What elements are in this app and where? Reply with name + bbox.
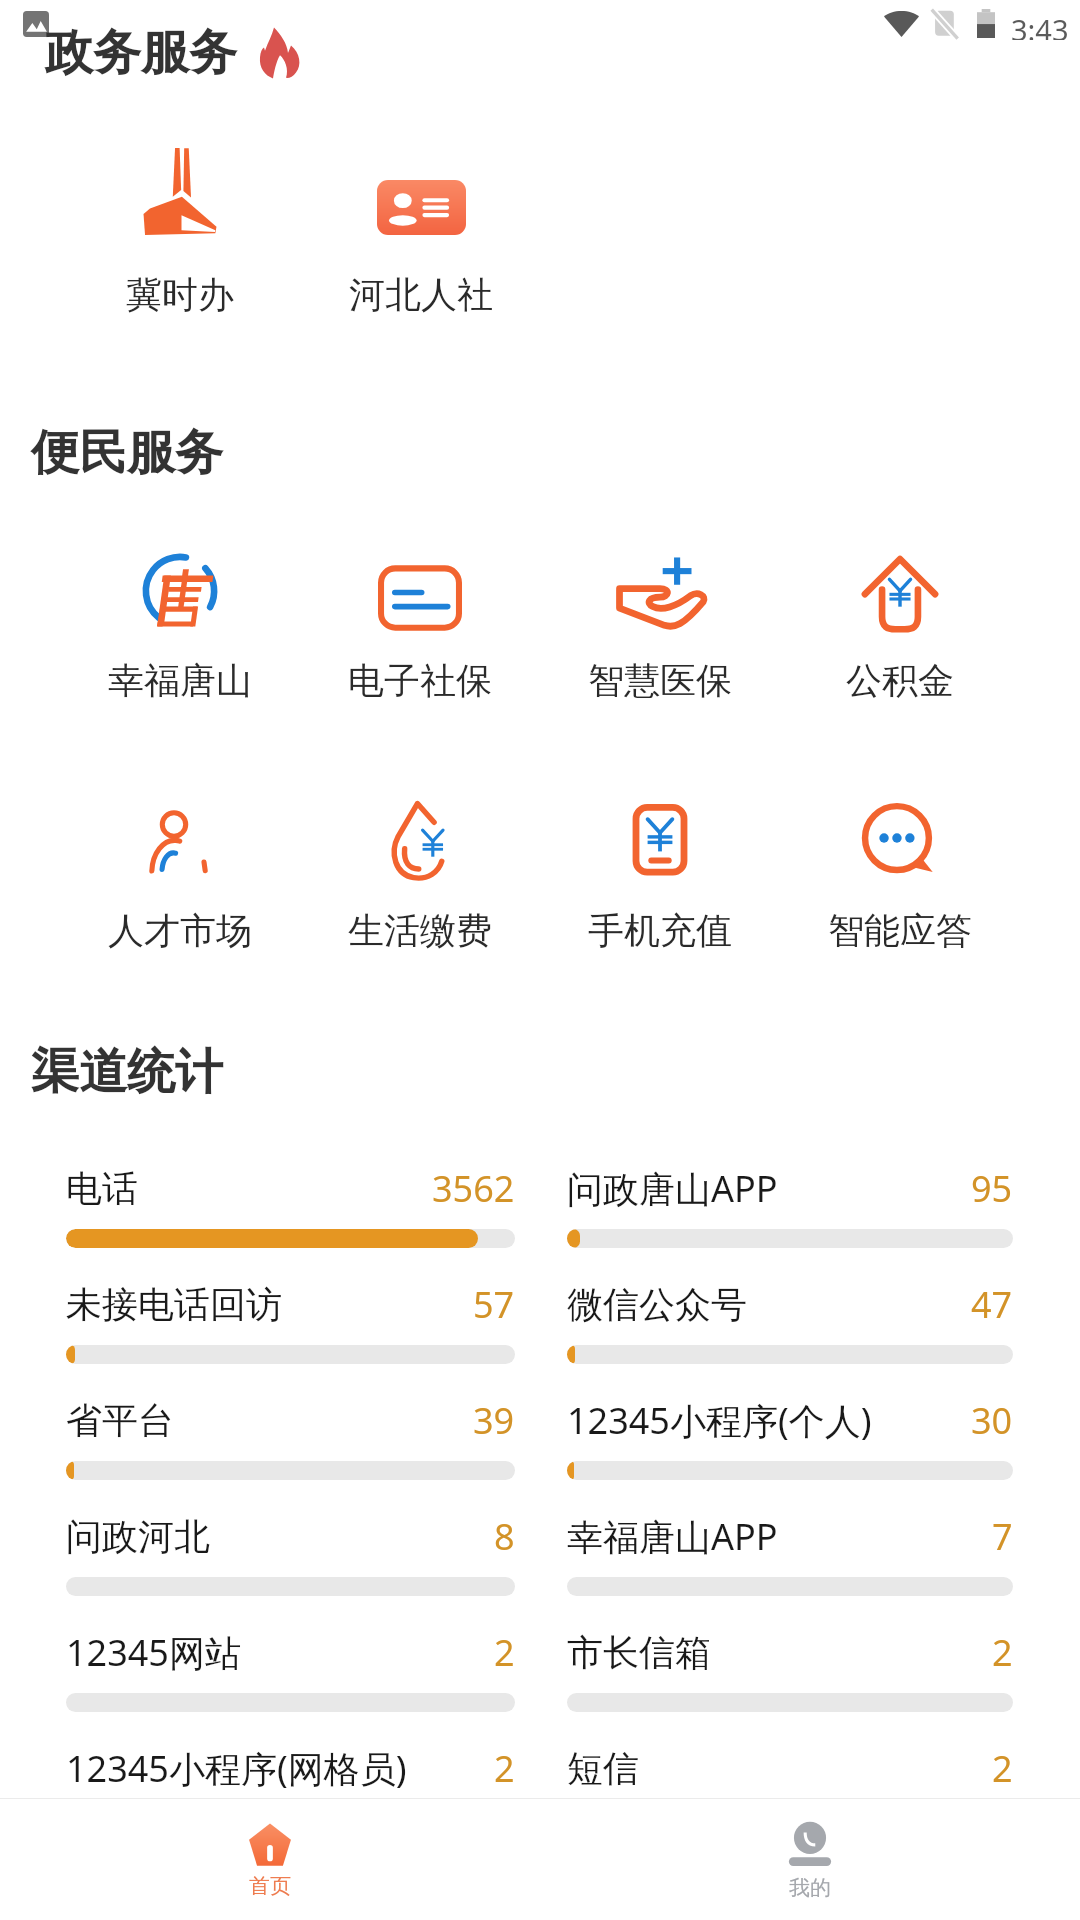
staticText: 幸福唐山APP	[567, 1512, 778, 1561]
staticText: 微信公众号	[567, 1282, 747, 1327]
staticText: 3:43	[1011, 10, 1069, 40]
button[interactable]: 12345网站	[66, 1628, 515, 1712]
button[interactable]: 生活缴费	[310, 802, 530, 953]
staticText: 渠道统计	[31, 1042, 223, 1102]
staticText: 问政河北	[66, 1514, 210, 1559]
staticText: 短信	[567, 1746, 639, 1791]
button[interactable]: 幸福唐山APP	[567, 1512, 1013, 1596]
other: App logo	[23, 11, 49, 37]
button[interactable]: 手机充值	[550, 802, 770, 953]
staticText: 3562	[432, 1164, 515, 1213]
button[interactable]: 问政唐山APP	[567, 1164, 1013, 1248]
staticText: 12345小程序(个人)	[567, 1396, 872, 1445]
button[interactable]: 我的	[742, 1799, 878, 1901]
staticText: 政务服务	[45, 23, 237, 83]
staticText: 7	[992, 1512, 1013, 1561]
staticText: 39	[473, 1396, 515, 1445]
staticText: 30	[971, 1396, 1013, 1445]
staticText: 2	[992, 1628, 1013, 1677]
button[interactable]: 微信公众号	[567, 1280, 1013, 1364]
staticText: 人才市场	[108, 908, 252, 953]
staticText: 2	[494, 1628, 515, 1677]
button[interactable]: 智能应答	[790, 802, 1010, 953]
button[interactable]: 电子社保	[310, 552, 530, 703]
staticText: 智慧医保	[588, 658, 732, 703]
staticText: 智能应答	[828, 908, 972, 953]
staticText: 生活缴费	[348, 908, 492, 953]
staticText: 幸福唐山	[108, 658, 252, 703]
button[interactable]: 首页	[202, 1799, 338, 1899]
button[interactable]: 智慧医保	[550, 552, 770, 703]
staticText: 12345网站	[66, 1628, 241, 1677]
button[interactable]: 河北人社	[311, 141, 531, 317]
staticText: 未接电话回访	[66, 1282, 282, 1327]
button[interactable]: 短信	[567, 1744, 1013, 1828]
button[interactable]: 省平台	[66, 1396, 515, 1480]
staticText: 河北人社	[349, 272, 493, 317]
button[interactable]: 12345小程序(网格员)	[66, 1744, 515, 1828]
button[interactable]: 问政河北	[66, 1512, 515, 1596]
staticText: 手机充值	[588, 908, 732, 953]
staticText: 便民服务	[31, 423, 223, 483]
staticText: 首页	[249, 1873, 291, 1899]
staticText: 2	[992, 1744, 1013, 1793]
button[interactable]: 电话	[66, 1164, 515, 1248]
button[interactable]: 公积金	[790, 552, 1010, 703]
button[interactable]: 市长信箱	[567, 1628, 1013, 1712]
staticText: 冀时办	[126, 272, 234, 317]
staticText: 电子社保	[348, 658, 492, 703]
button[interactable]: 12345小程序(个人)	[567, 1396, 1013, 1480]
staticText: 问政唐山APP	[567, 1164, 778, 1213]
staticText: 12345小程序(网格员)	[66, 1744, 407, 1793]
staticText: 95	[971, 1164, 1013, 1213]
staticText: 我的	[789, 1875, 831, 1901]
staticText: 省平台	[66, 1398, 174, 1443]
staticText: 2	[494, 1744, 515, 1793]
staticText: 8	[494, 1512, 515, 1561]
staticText: 57	[473, 1280, 515, 1329]
staticText: 电话	[66, 1166, 138, 1211]
button[interactable]: 幸福唐山	[70, 552, 290, 703]
staticText: 市长信箱	[567, 1630, 711, 1675]
button[interactable]: 冀时办	[70, 141, 290, 317]
staticText: 公积金	[846, 658, 954, 703]
button[interactable]: 未接电话回访	[66, 1280, 515, 1364]
button[interactable]: 人才市场	[70, 802, 290, 953]
staticText: 47	[971, 1280, 1013, 1329]
